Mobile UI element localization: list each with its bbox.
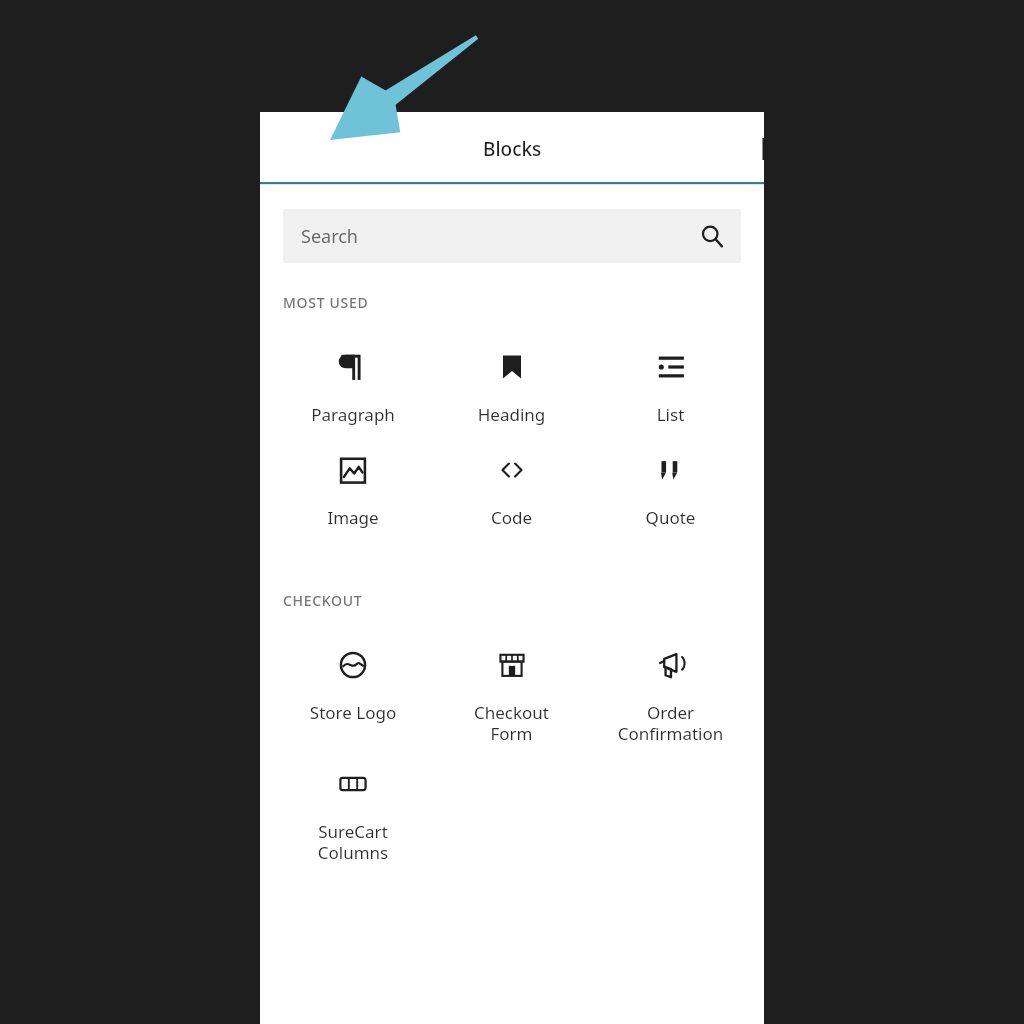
- button[interactable]: SureCart Columns: [274, 767, 432, 864]
- staticText: Heading: [432, 403, 591, 426]
- staticText: Code: [432, 506, 591, 529]
- button[interactable]: Paragraph: [274, 350, 432, 426]
- button[interactable]: Store Logo: [274, 648, 432, 724]
- button[interactable]: Quote: [591, 453, 750, 529]
- button[interactable]: List: [591, 350, 750, 426]
- staticText: Paragraph: [274, 403, 432, 426]
- button[interactable]: Blocks: [260, 112, 764, 185]
- staticText: Quote: [591, 506, 750, 529]
- staticText: Order Confirmation: [591, 701, 750, 745]
- button[interactable]: Order Confirmation: [591, 648, 750, 745]
- button[interactable]: Heading: [432, 350, 591, 426]
- button[interactable]: Checkout Form: [432, 648, 591, 745]
- button[interactable]: Search: [283, 209, 741, 263]
- staticText: Search: [301, 224, 358, 249]
- staticText: Checkout Form: [432, 701, 591, 745]
- staticText: Blocks: [483, 136, 542, 162]
- staticText: MOST USED: [283, 293, 369, 312]
- staticText: Image: [274, 506, 432, 529]
- button[interactable]: Image: [274, 453, 432, 529]
- staticText: List: [591, 403, 750, 426]
- staticText: SureCart Columns: [274, 820, 432, 864]
- staticText: Store Logo: [274, 701, 432, 724]
- staticText: CHECKOUT: [283, 591, 363, 610]
- button[interactable]: Code: [432, 453, 591, 529]
